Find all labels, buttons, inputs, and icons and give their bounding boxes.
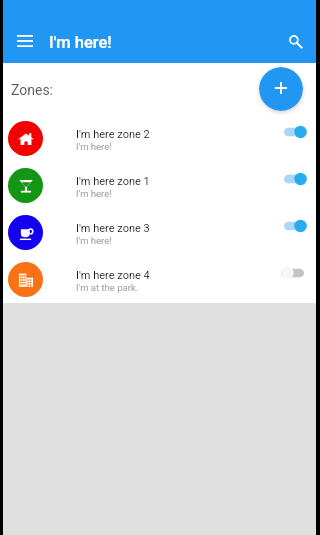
button[interactable]: I'm here zone 3 [0, 209, 320, 256]
staticText: I'm here zone 1 [76, 175, 150, 188]
button[interactable]: I'm here zone 1 [0, 162, 320, 209]
button[interactable]: Navigation menu [0, 18, 46, 63]
button[interactable]: Toggle I'm here zone 1 [280, 162, 320, 209]
staticText: I'm here! [76, 235, 112, 246]
button[interactable]: Toggle I'm here zone 4 [280, 256, 320, 303]
staticText: I'm here! [76, 188, 112, 199]
staticText: I'm at the park. [76, 282, 139, 293]
button[interactable]: I'm here zone 4 [0, 256, 320, 303]
staticText: I'm here! [49, 33, 112, 52]
staticText: I'm here zone 4 [76, 269, 150, 282]
staticText: I'm here zone 3 [76, 222, 150, 235]
button[interactable]: Toggle I'm here zone 3 [280, 209, 320, 256]
button[interactable]: Search [276, 18, 320, 63]
staticText: I'm here zone 2 [76, 128, 150, 141]
button[interactable]: Add zone [259, 67, 303, 111]
button[interactable]: Toggle I'm here zone 2 [280, 115, 320, 162]
button[interactable]: I'm here zone 2 [0, 115, 320, 162]
staticText: Zones: [11, 82, 53, 98]
staticText: I'm here! [76, 141, 112, 152]
